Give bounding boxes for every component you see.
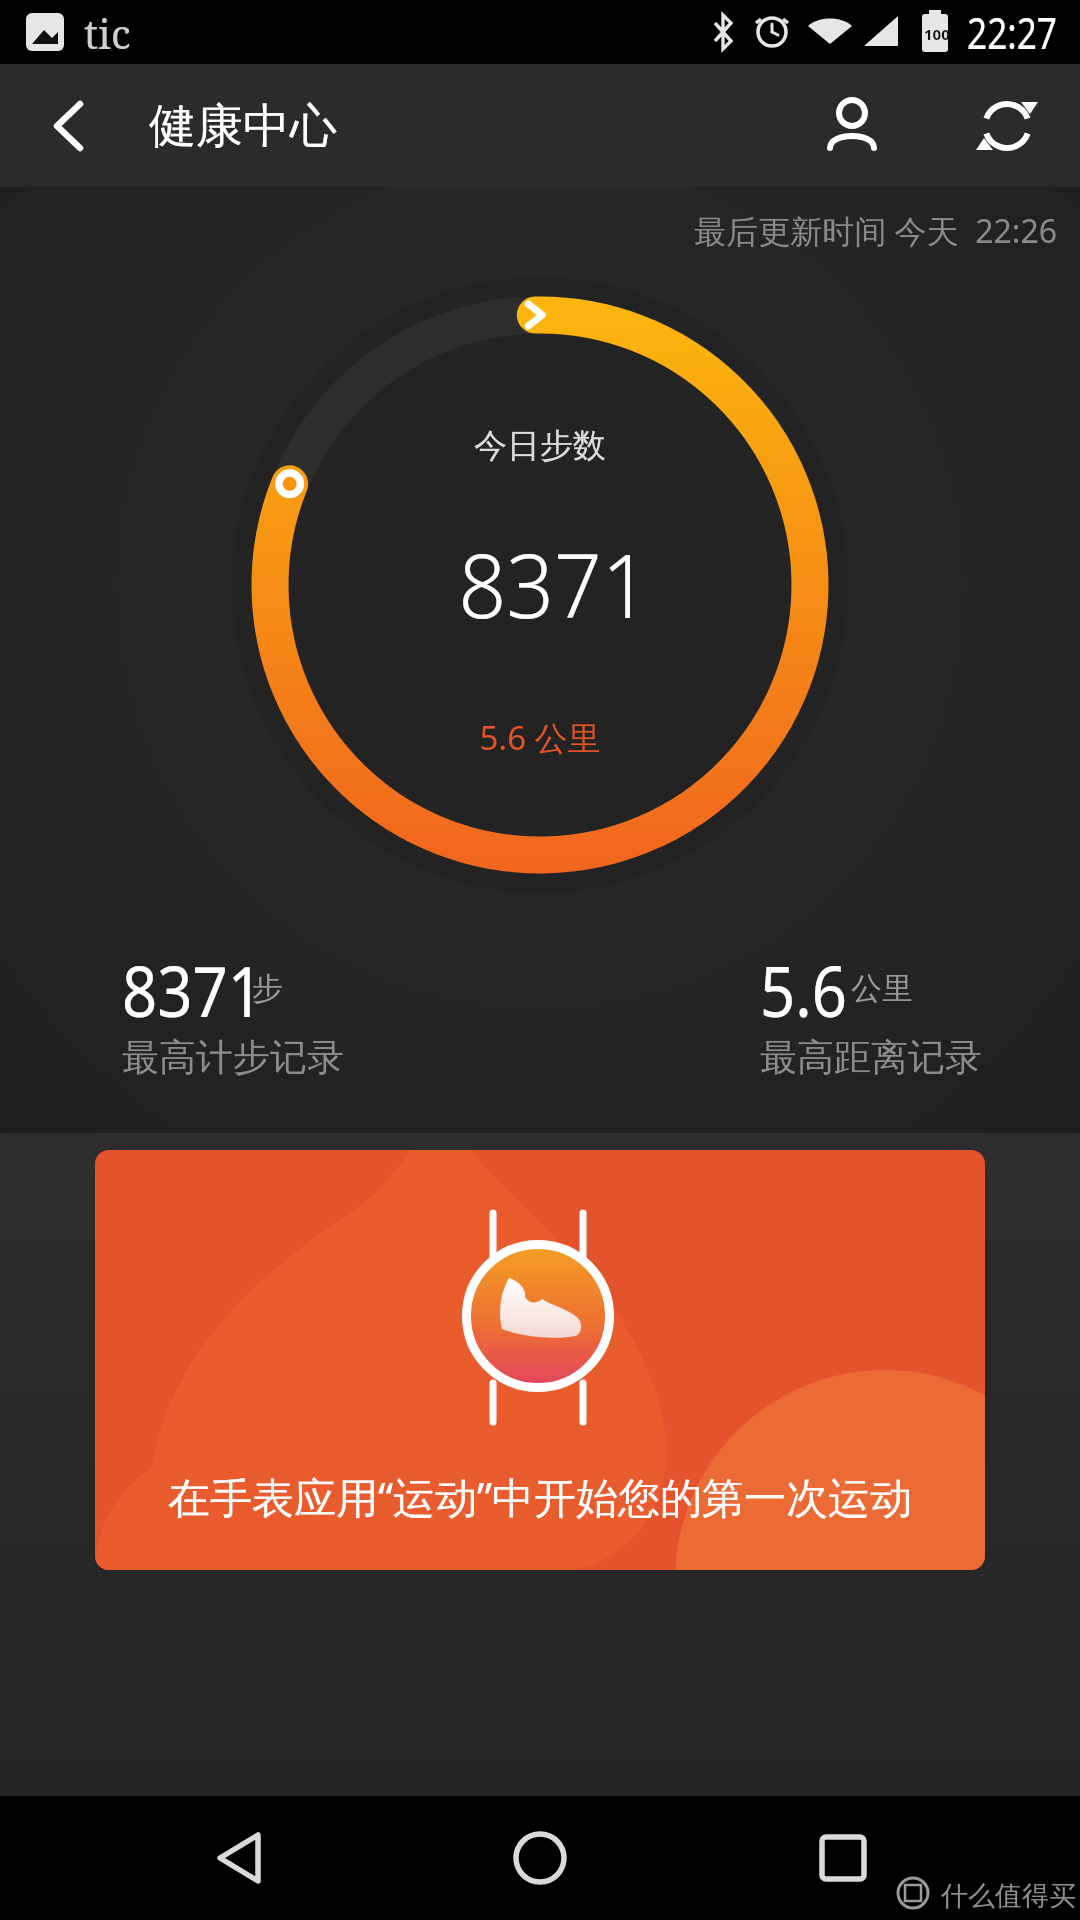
button[interactable]: 在手表应用“运动”中开始您的第一次运动 bbox=[95, 1150, 985, 1570]
staticText: 最高距离记录 bbox=[760, 1034, 982, 1081]
button[interactable] bbox=[959, 78, 1055, 174]
staticText: 最高计步记录 bbox=[122, 1034, 344, 1081]
button[interactable] bbox=[480, 1798, 600, 1918]
staticText: 8371 bbox=[41, 524, 1067, 644]
staticText: 什么值得买 bbox=[941, 1879, 1076, 1913]
staticText: tic bbox=[84, 6, 131, 60]
button[interactable] bbox=[783, 1798, 903, 1918]
staticText: 最后更新时间 今天 22:26 bbox=[0, 209, 1057, 253]
staticText: 今日步数 bbox=[0, 425, 1080, 467]
staticText: 5.6 公里 bbox=[0, 715, 1080, 760]
button[interactable] bbox=[20, 78, 116, 174]
staticText: 5.6 bbox=[760, 942, 847, 1037]
staticText: 22:27 bbox=[967, 2, 1057, 62]
staticText: 步 bbox=[252, 969, 283, 1008]
staticText: 8371 bbox=[122, 942, 264, 1037]
button[interactable] bbox=[180, 1798, 300, 1918]
staticText: 100 bbox=[924, 24, 950, 44]
button[interactable] bbox=[804, 78, 900, 174]
staticText: 健康中心 bbox=[149, 97, 337, 156]
staticText: 公里 bbox=[851, 969, 913, 1008]
staticText: 在手表应用“运动”中开始您的第一次运动 bbox=[95, 1468, 985, 1525]
